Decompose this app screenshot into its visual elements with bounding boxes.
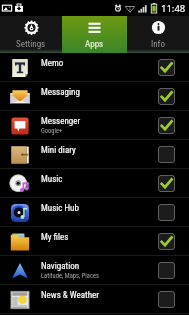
staticText: Apps: [85, 39, 104, 50]
button[interactable]: Enabled: [158, 88, 175, 105]
button[interactable]: Navigation: [0, 256, 189, 285]
staticText: 11:48: [161, 2, 186, 15]
button[interactable]: Enabled: [158, 117, 175, 134]
button[interactable]: Mini diary: [0, 140, 189, 169]
staticText: Google+: [41, 127, 63, 135]
button[interactable]: Music Hub: [0, 198, 189, 227]
staticText: Mini diary: [41, 145, 76, 156]
button[interactable]: Enabled: [158, 59, 175, 76]
button[interactable]: Disabled: [158, 262, 175, 279]
button[interactable]: Memo: [0, 53, 189, 82]
staticText: Navigation: [41, 261, 80, 272]
staticText: Settings: [16, 39, 46, 50]
staticText: Latitude, Maps, Places: [41, 272, 99, 280]
button[interactable]: Apps: [62, 16, 127, 53]
staticText: Memo: [41, 58, 64, 69]
staticText: News & Weather: [41, 290, 99, 301]
staticText: Music Hub: [41, 203, 79, 214]
button[interactable]: Settings: [0, 16, 62, 53]
button[interactable]: Enabled: [158, 233, 175, 250]
button[interactable]: Enabled: [158, 175, 175, 192]
staticText: Music: [41, 174, 63, 185]
button[interactable]: News & Weather: [0, 285, 189, 314]
staticText: Info: [151, 39, 165, 50]
button[interactable]: Info: [127, 16, 189, 53]
staticText: My files: [41, 232, 69, 243]
button[interactable]: Messenger: [0, 111, 189, 140]
button[interactable]: Disabled: [158, 204, 175, 221]
button[interactable]: My files: [0, 227, 189, 256]
button[interactable]: Messaging: [0, 82, 189, 111]
staticText: Messenger: [41, 116, 81, 127]
staticText: Messaging: [41, 87, 80, 98]
button[interactable]: Music: [0, 169, 189, 198]
button[interactable]: Disabled: [158, 146, 175, 163]
button[interactable]: Disabled: [158, 291, 175, 308]
